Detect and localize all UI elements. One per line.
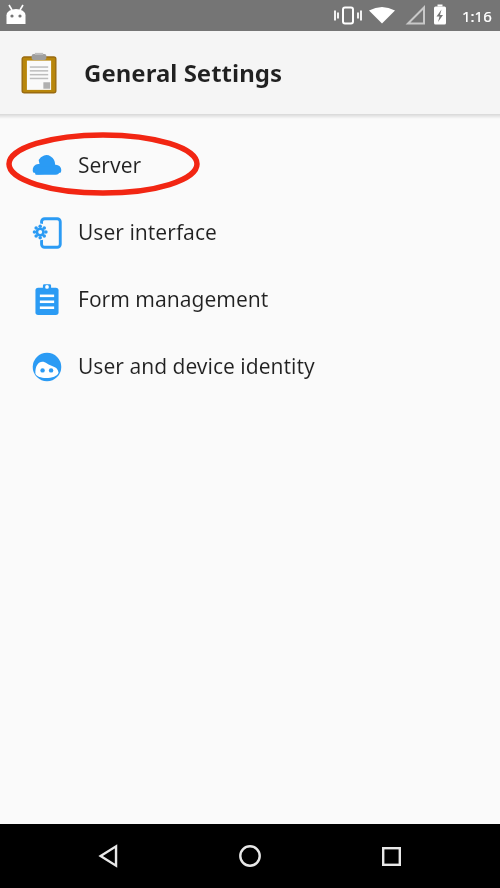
button[interactable]: Home [218,824,282,888]
staticText: 1:16 [462,6,492,26]
button[interactable]: Server [0,132,500,199]
button[interactable]: Form management [0,266,500,333]
button[interactable]: Recent apps [359,824,423,888]
button[interactable]: Back [77,824,141,888]
staticText: General Settings [84,56,283,89]
button[interactable]: User and device identity [0,333,500,400]
staticText: Form management [78,285,269,314]
button[interactable]: User interface [0,199,500,266]
staticText: User interface [78,218,217,247]
staticText: User and device identity [78,352,315,381]
staticText: Server [78,151,142,180]
